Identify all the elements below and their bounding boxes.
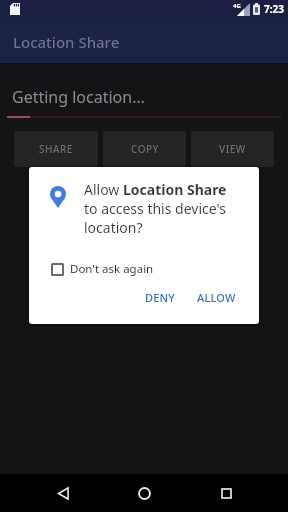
staticText: DENY [145,290,175,305]
button[interactable]: COPY [103,131,186,167]
staticText: 4G [233,2,241,10]
staticText: ALLOW [197,290,236,305]
button[interactable] [44,474,82,512]
button[interactable]: DENY [141,286,179,309]
button[interactable]: SHARE [14,131,98,167]
staticText: 7:23 [264,2,284,16]
staticText: Don't ask again [70,261,154,277]
button[interactable]: ALLOW [193,286,240,309]
staticText: SHARE [39,142,73,156]
staticText: Location Share [13,32,120,52]
staticText: VIEW [219,142,246,156]
staticText: Getting location… [12,86,145,108]
staticText: Allow Location Share to access this devi… [84,180,227,237]
button[interactable] [125,474,163,512]
button[interactable] [207,474,245,512]
staticText: COPY [131,142,159,156]
button[interactable]: Don't ask again [51,261,154,277]
button[interactable]: VIEW [191,131,274,167]
